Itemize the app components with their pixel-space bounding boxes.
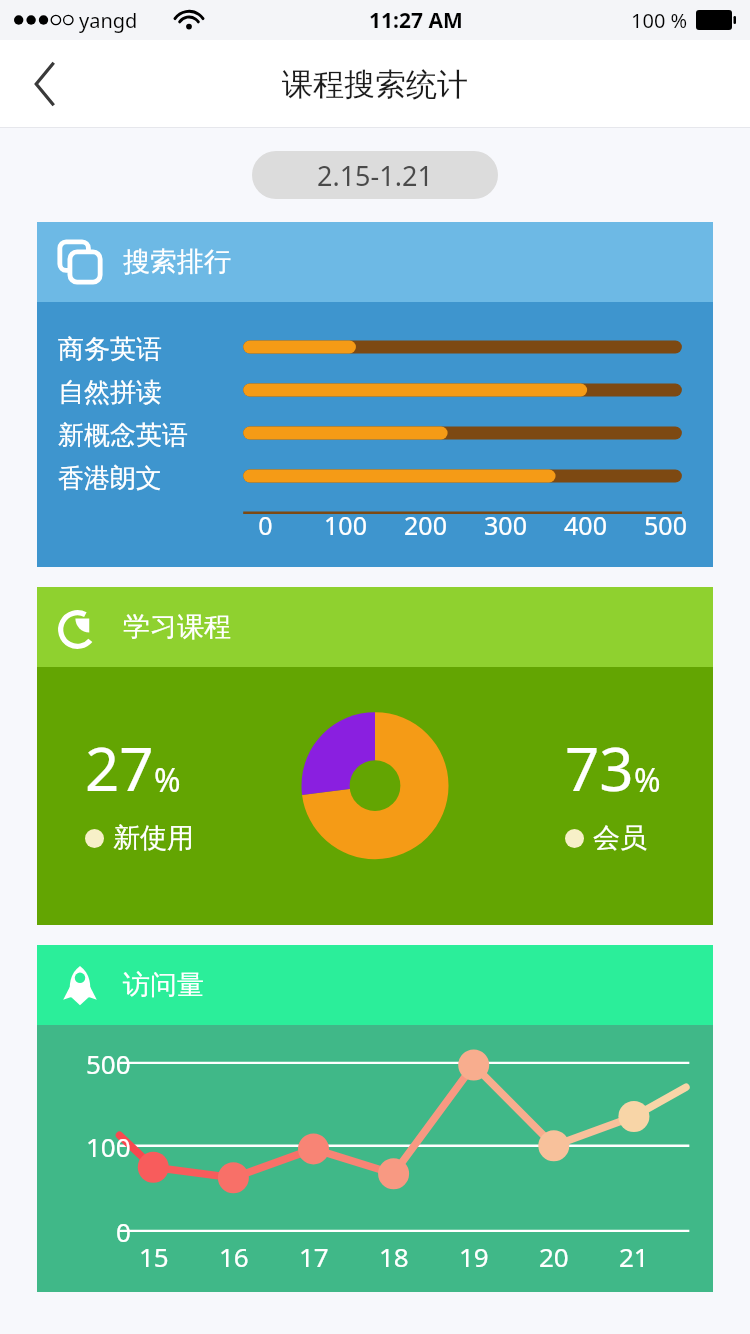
staticText: 27 xyxy=(85,727,154,809)
staticText: 100 xyxy=(324,508,367,542)
staticText: % xyxy=(634,758,661,802)
button[interactable]: 2.15-1.21 xyxy=(252,151,498,199)
staticText: yangd xyxy=(79,7,138,34)
staticText: 学习课程 xyxy=(123,610,231,644)
staticText: 0 xyxy=(116,1214,131,1249)
button[interactable]: 访问量 xyxy=(37,945,713,1292)
staticText: % xyxy=(154,758,181,802)
staticText: 课程搜索统计 xyxy=(282,65,468,104)
staticText: 19 xyxy=(459,1239,489,1274)
staticText: 100 xyxy=(86,1129,131,1164)
staticText: 自然拼读 xyxy=(58,376,162,409)
button[interactable]: Back xyxy=(14,53,76,115)
staticText: 11:27 AM xyxy=(369,6,463,35)
staticText: 新使用 xyxy=(113,821,194,855)
staticText: 0 xyxy=(258,508,273,542)
staticText: 400 xyxy=(564,508,607,542)
staticText: 17 xyxy=(299,1239,329,1274)
staticText: 73 xyxy=(565,727,634,809)
button[interactable]: 搜索排行 xyxy=(37,222,713,567)
staticText: 搜索排行 xyxy=(123,245,231,279)
staticText: 21 xyxy=(619,1239,649,1274)
staticText: 新概念英语 xyxy=(58,419,188,452)
staticText: 500 xyxy=(86,1046,131,1081)
staticText: 200 xyxy=(404,508,447,542)
staticText: 香港朗文 xyxy=(58,462,162,495)
staticText: 18 xyxy=(379,1239,409,1274)
staticText: 15 xyxy=(139,1239,169,1274)
staticText: 300 xyxy=(484,508,527,542)
button[interactable]: 学习课程 xyxy=(37,587,713,925)
staticText: 100 % xyxy=(631,7,688,34)
staticText: 2.15-1.21 xyxy=(317,157,433,194)
staticText: 500 xyxy=(644,508,687,542)
staticText: 商务英语 xyxy=(58,333,162,366)
staticText: 16 xyxy=(219,1239,249,1274)
staticText: 会员 xyxy=(593,821,647,855)
staticText: 访问量 xyxy=(123,968,204,1002)
staticText: 20 xyxy=(539,1239,569,1274)
